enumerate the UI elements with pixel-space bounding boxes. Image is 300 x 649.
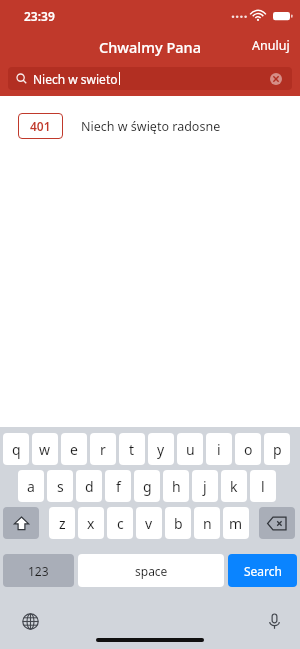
button[interactable]: d	[76, 470, 102, 502]
button[interactable]: s	[47, 470, 73, 502]
button[interactable]: f	[105, 470, 131, 502]
button[interactable]: x	[78, 507, 104, 539]
button[interactable]: y	[148, 433, 174, 465]
staticText: p	[273, 440, 282, 459]
button[interactable]: r	[90, 433, 116, 465]
staticText: q	[12, 440, 21, 459]
staticText: u	[186, 440, 195, 459]
staticText: 123	[28, 563, 49, 579]
staticText: y	[157, 440, 165, 459]
button[interactable]: e	[61, 433, 87, 465]
button[interactable]: 123	[3, 554, 74, 587]
button[interactable]: n	[194, 507, 220, 539]
button[interactable]: Backspace	[259, 507, 295, 539]
button[interactable]: t	[119, 433, 145, 465]
staticText: e	[70, 440, 78, 459]
staticText: l	[261, 477, 265, 496]
staticText: a	[27, 477, 35, 496]
button[interactable]: j	[192, 470, 218, 502]
staticText: s	[57, 477, 64, 496]
button[interactable]: Shift	[3, 507, 39, 539]
staticText: k	[230, 477, 238, 496]
button[interactable]: k	[221, 470, 247, 502]
staticText: m	[229, 514, 243, 533]
staticText: h	[172, 477, 181, 496]
staticText: c	[117, 514, 124, 533]
staticText: r	[100, 440, 106, 459]
button[interactable]: 401	[0, 108, 300, 144]
button[interactable]: a	[18, 470, 44, 502]
button[interactable]: q	[3, 433, 29, 465]
button[interactable]: h	[163, 470, 189, 502]
button[interactable]: v	[136, 507, 162, 539]
staticText: Search	[244, 563, 282, 579]
button[interactable]: l	[250, 470, 276, 502]
button[interactable]: w	[32, 433, 58, 465]
button[interactable]: z	[49, 507, 75, 539]
button[interactable]: Switch keyboard language	[18, 609, 42, 633]
button[interactable]: Clear search	[266, 69, 286, 89]
button[interactable]: b	[165, 507, 191, 539]
staticText: z	[59, 514, 66, 533]
button[interactable]: Search	[228, 554, 297, 587]
staticText: n	[203, 514, 212, 533]
button[interactable]: m	[223, 507, 249, 539]
staticText: j	[203, 477, 207, 496]
button[interactable]: Anuluj	[242, 33, 300, 58]
staticText: b	[174, 514, 183, 533]
staticText: Niech w święto radosne	[81, 118, 221, 135]
button[interactable]: Niech w swieto	[8, 67, 292, 90]
staticText: v	[145, 514, 153, 533]
staticText: t	[129, 440, 135, 459]
staticText: o	[244, 440, 253, 459]
button[interactable]: p	[264, 433, 290, 465]
staticText: g	[143, 477, 152, 496]
staticText: w	[39, 440, 51, 459]
button[interactable]: o	[235, 433, 261, 465]
staticText: 401	[30, 118, 51, 134]
staticText: d	[85, 477, 94, 496]
staticText: Chwalmy Pana	[0, 37, 300, 57]
button[interactable]: c	[107, 507, 133, 539]
staticText: f	[116, 477, 121, 496]
button[interactable]: i	[206, 433, 232, 465]
staticText: x	[87, 514, 95, 533]
button[interactable]: g	[134, 470, 160, 502]
staticText: space	[135, 563, 168, 579]
staticText: Anuluj	[252, 37, 290, 54]
button[interactable]: u	[177, 433, 203, 465]
staticText: 23:39	[24, 8, 55, 24]
button[interactable]: space	[78, 554, 224, 587]
staticText: Niech w swieto	[33, 71, 118, 87]
button[interactable]: Dictate	[262, 609, 286, 633]
staticText: i	[217, 440, 221, 459]
